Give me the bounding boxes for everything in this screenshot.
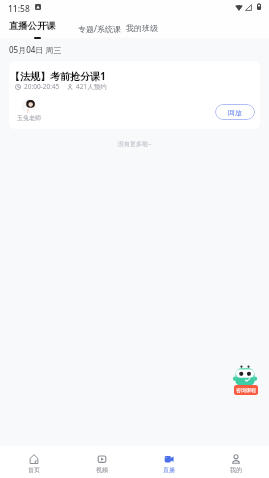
- button[interactable]: 我的班级: [121, 21, 163, 35]
- staticText: 【法规】考前抢分课1: [10, 69, 106, 83]
- staticText: 视频: [96, 466, 108, 474]
- staticText: 回放: [228, 108, 242, 117]
- button[interactable]: 首页: [0, 446, 68, 478]
- button[interactable]: 直播: [135, 446, 202, 478]
- staticText: 咨询课程: [236, 387, 256, 393]
- staticText: 我的班级: [126, 23, 158, 33]
- button[interactable]: 【法规】考前抢分课1: [9, 61, 260, 129]
- staticText: 没有更多啦~: [118, 140, 152, 148]
- staticText: 421人预约: [76, 82, 107, 91]
- button[interactable]: 专题/系统课: [73, 21, 126, 36]
- staticText: 11:58: [8, 3, 30, 15]
- staticText: 直播: [163, 466, 175, 474]
- staticText: 首页: [28, 466, 40, 474]
- staticText: 20:00-20:45: [24, 82, 60, 91]
- button[interactable]: 视频: [68, 446, 135, 478]
- staticText: 05月04日 周三: [9, 44, 62, 55]
- button[interactable]: 回放: [215, 104, 255, 120]
- button[interactable]: 咨询课程: [231, 364, 261, 398]
- button[interactable]: 我的: [202, 446, 269, 478]
- staticText: 直播公开课: [9, 20, 56, 32]
- staticText: 玉兔老师: [17, 114, 41, 122]
- staticText: 专题/系统课: [78, 23, 121, 34]
- button[interactable]: 直播公开课: [4, 20, 61, 32]
- staticText: 我的: [230, 466, 242, 474]
